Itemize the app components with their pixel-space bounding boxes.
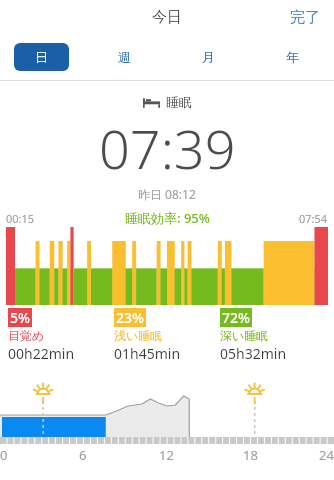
staticText: 月	[202, 49, 215, 65]
staticText: 年	[286, 49, 299, 65]
button[interactable]: 完了	[276, 2, 334, 33]
staticText: 週	[118, 49, 131, 65]
staticText: 睡眠効率: 95%	[125, 209, 210, 227]
staticText: 0	[0, 446, 8, 464]
button[interactable]: 5%	[8, 308, 114, 363]
button[interactable]: 月	[180, 43, 236, 71]
button[interactable]: 72%	[220, 308, 326, 363]
staticText: 01h45min	[114, 344, 181, 363]
staticText: 浅い睡眠	[114, 328, 163, 343]
staticText: 18	[243, 446, 258, 464]
staticText: 07:39	[99, 111, 236, 185]
staticText: 5%	[10, 308, 30, 327]
staticText: 深い睡眠	[220, 328, 269, 343]
button[interactable]: 週	[97, 43, 152, 71]
button[interactable]: 23%	[114, 308, 220, 363]
staticText: 睡眠	[166, 94, 192, 110]
button[interactable]: 日	[14, 43, 69, 71]
staticText: 23%	[116, 308, 144, 327]
staticText: 24	[319, 446, 334, 464]
staticText: 72%	[222, 308, 250, 327]
staticText: 昨日 08:12	[138, 186, 196, 202]
other: Sleep	[143, 97, 160, 108]
staticText: 00h22min	[8, 344, 75, 363]
button[interactable]: 年	[264, 43, 320, 71]
staticText: 05h32min	[220, 344, 287, 363]
staticText: 目覚め	[8, 328, 45, 343]
staticText: 6	[79, 446, 87, 464]
staticText: 12	[159, 446, 174, 464]
staticText: 07:54	[299, 211, 328, 226]
staticText: 日	[35, 49, 48, 65]
staticText: 完了	[290, 8, 320, 27]
staticText: 00:15	[6, 211, 35, 226]
staticText: 今日	[152, 8, 182, 27]
